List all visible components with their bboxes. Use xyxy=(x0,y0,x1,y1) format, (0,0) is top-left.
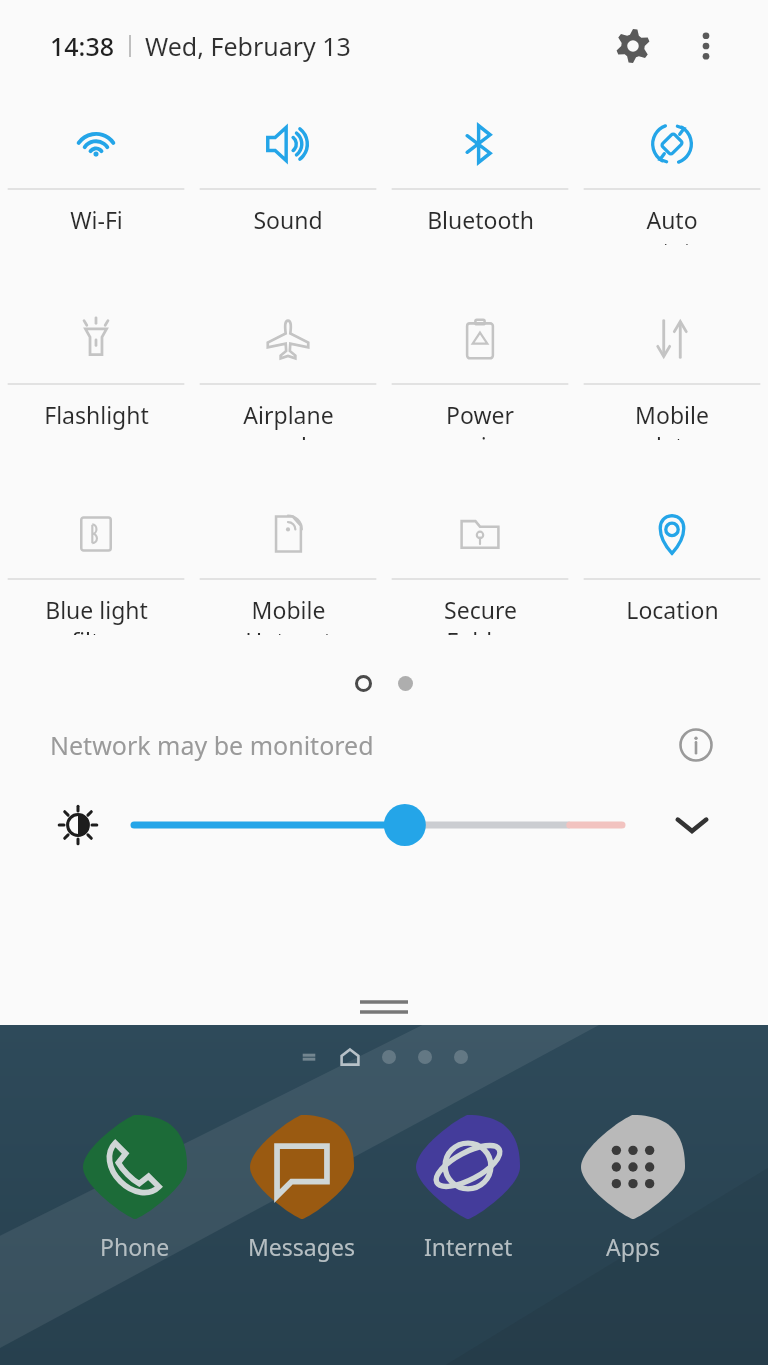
staticText: Auto rotate xyxy=(639,204,705,245)
button[interactable]: Expand brightness settings xyxy=(664,797,720,853)
button[interactable]: Brightness slider xyxy=(134,797,622,853)
staticText: Apps xyxy=(606,1231,661,1262)
button[interactable]: Blue light filter xyxy=(0,490,192,635)
button[interactable]: Bluetooth xyxy=(384,100,576,245)
staticText: Mobile data xyxy=(635,399,709,440)
button[interactable]: Mobile data xyxy=(576,295,768,440)
button[interactable]: Auto rotate xyxy=(576,100,768,245)
button[interactable]: Airplane mode xyxy=(192,295,384,440)
staticText: Phone xyxy=(100,1231,170,1262)
button[interactable]: Power saving xyxy=(384,295,576,440)
staticText: Flashlight xyxy=(44,399,149,430)
staticText: 14:38 xyxy=(50,29,115,63)
button[interactable]: Mobile Hotspot xyxy=(192,490,384,635)
button[interactable]: Messages xyxy=(248,1115,355,1262)
button[interactable]: Settings xyxy=(604,17,662,75)
staticText: Network may be monitored xyxy=(50,728,374,762)
staticText: Wi-Fi xyxy=(70,204,123,235)
button[interactable]: Secure Folder xyxy=(384,490,576,635)
staticText: Location xyxy=(626,594,719,625)
staticText: Secure Folder xyxy=(444,594,517,635)
button[interactable]: Sound xyxy=(192,100,384,245)
button[interactable]: Flashlight xyxy=(0,295,192,440)
button[interactable]: Auto brightness xyxy=(46,794,110,856)
button[interactable]: Wi-Fi xyxy=(0,100,192,245)
staticText: Sound xyxy=(253,204,323,235)
button[interactable]: Apps xyxy=(581,1115,685,1262)
staticText: Blue light filter xyxy=(45,594,148,635)
staticText: Messages xyxy=(248,1231,355,1262)
staticText: Mobile Hotspot xyxy=(245,594,332,635)
button[interactable]: Information xyxy=(672,721,720,769)
staticText: Airplane mode xyxy=(243,399,334,440)
staticText: Bluetooth xyxy=(427,204,534,235)
button[interactable]: Phone xyxy=(83,1115,187,1262)
button[interactable]: More options xyxy=(680,20,732,72)
staticText: Power saving xyxy=(445,399,515,440)
button[interactable]: Internet xyxy=(416,1115,520,1262)
button[interactable]: Location xyxy=(576,490,768,635)
staticText: Wed, February 13 xyxy=(145,29,351,63)
staticText: Internet xyxy=(424,1231,513,1262)
